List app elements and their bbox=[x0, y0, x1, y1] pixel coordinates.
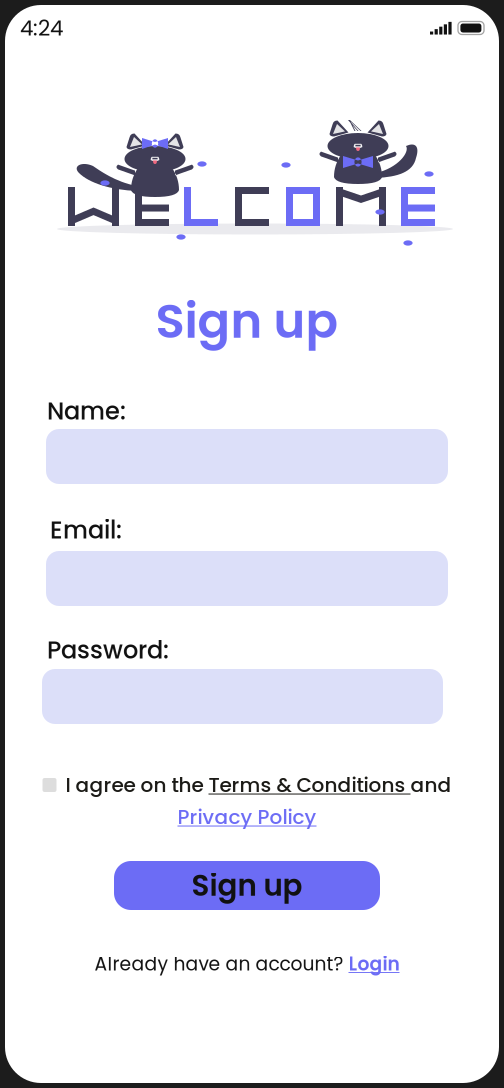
button[interactable]: Sign up bbox=[114, 861, 380, 910]
staticText: 4:24 bbox=[20, 13, 63, 43]
staticText: Password: bbox=[47, 633, 169, 667]
staticText: Name: bbox=[47, 394, 126, 428]
staticText: Privacy Policy bbox=[177, 803, 316, 831]
button[interactable]: Sign up bbox=[0, 292, 494, 350]
staticText: Sign up bbox=[191, 865, 302, 906]
staticText: Login bbox=[348, 951, 399, 977]
button[interactable]: Privacy Policy bbox=[177, 803, 316, 831]
button[interactable]: Agree to terms and conditions bbox=[42, 778, 56, 792]
staticText: Email: bbox=[50, 513, 122, 547]
button[interactable]: Login bbox=[348, 951, 399, 977]
button[interactable]: Email bbox=[5, 551, 499, 606]
staticText: Already have an account? bbox=[94, 951, 343, 977]
staticText: I agree on the Terms & Conditions and bbox=[65, 771, 451, 799]
button[interactable]: Name bbox=[5, 429, 499, 484]
button[interactable]: Password bbox=[5, 669, 499, 724]
staticText: Sign up bbox=[155, 287, 338, 355]
